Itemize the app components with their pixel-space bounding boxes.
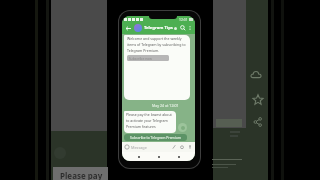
button[interactable]: Welcome and support the weekly items of … <box>124 35 190 100</box>
button[interactable]: More options <box>187 25 193 31</box>
button[interactable]: Attach file <box>171 144 177 150</box>
staticText: Welcome and support the weekly items of … <box>127 36 188 53</box>
staticText: Please pay <box>60 170 103 180</box>
button[interactable]: Search <box>179 24 187 32</box>
staticText: Telegram Tips <box>144 25 173 31</box>
staticText: Subscribe to Telegram Premium <box>130 135 181 140</box>
staticText: Subscribe now <box>127 56 152 61</box>
button[interactable]: Navigation <box>175 153 182 160</box>
button[interactable]: Subscribe now <box>127 55 169 61</box>
button[interactable]: Scroll to bottom <box>178 123 187 132</box>
button[interactable]: Subscribe to Telegram Premium <box>124 134 187 141</box>
button[interactable]: Voice message <box>187 144 193 150</box>
staticText: May 24 at 12:01 <box>152 103 179 108</box>
button[interactable]: Navigation <box>135 153 142 160</box>
button[interactable]: Camera <box>179 144 185 150</box>
button[interactable]: Channel profile <box>134 24 142 32</box>
button[interactable]: Navigation <box>155 153 162 160</box>
staticText: Please pay the lowest about to activate … <box>126 112 175 129</box>
button[interactable]: Emoji <box>124 144 130 150</box>
staticText: 12:01 <box>179 17 188 22</box>
button[interactable]: Share <box>252 116 264 128</box>
button[interactable]: Back <box>124 24 132 32</box>
button[interactable]: Favorite <box>252 94 264 106</box>
staticText: Message <box>131 145 147 150</box>
button[interactable]: Download <box>250 69 262 81</box>
button[interactable]: Please pay the lowest about to activate … <box>124 111 176 133</box>
